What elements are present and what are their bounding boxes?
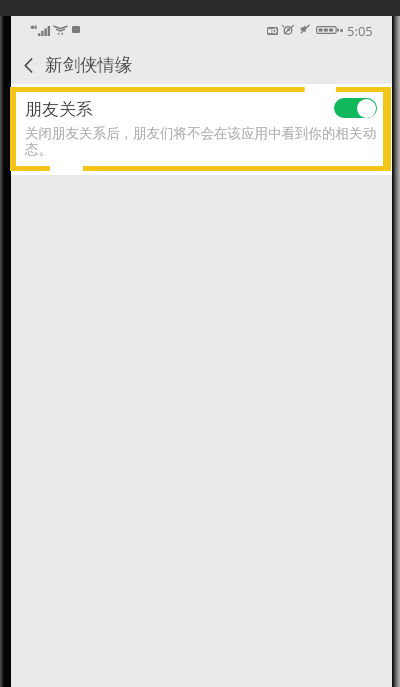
staticText: 朋友关系 [25, 99, 93, 120]
button[interactable]: 朋友关系 [11, 84, 392, 171]
staticText: 关闭朋友关系后，朋友们将不会在该应用中看到你的相关动态。 [25, 125, 379, 158]
button[interactable]: Back [11, 48, 45, 82]
staticText: 新剑侠情缘 [45, 54, 133, 76]
staticText: 5:05 [347, 22, 373, 40]
button[interactable]: Friend relationship toggle [334, 98, 377, 118]
